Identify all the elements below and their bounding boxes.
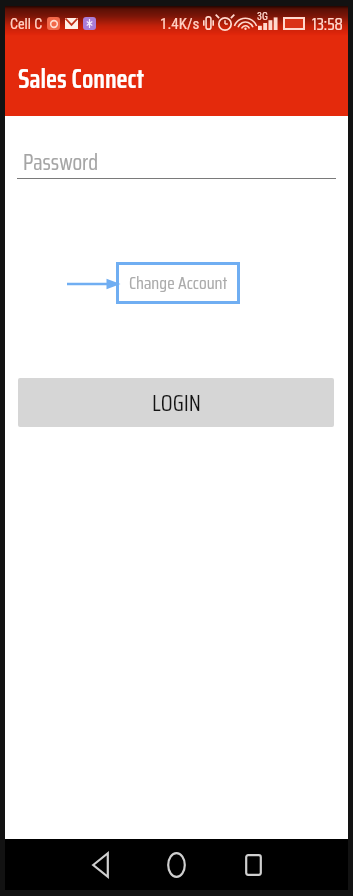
button[interactable]: Back (67, 839, 133, 890)
staticText: Password (23, 145, 99, 180)
staticText: LOGIN (152, 385, 201, 421)
button[interactable]: Home (143, 839, 209, 890)
button[interactable]: Change Account (119, 265, 237, 301)
staticText: Cell C (10, 16, 43, 32)
button[interactable]: LOGIN (18, 378, 334, 427)
staticText: Sales Connect (18, 58, 145, 99)
button[interactable]: Password (17, 145, 336, 181)
staticText: 13:58 (312, 11, 343, 37)
staticText: Change Account (129, 269, 228, 297)
staticText: 3G (257, 11, 268, 23)
staticText: 1.4K/s (160, 15, 200, 33)
button[interactable]: Recent apps (220, 839, 286, 890)
